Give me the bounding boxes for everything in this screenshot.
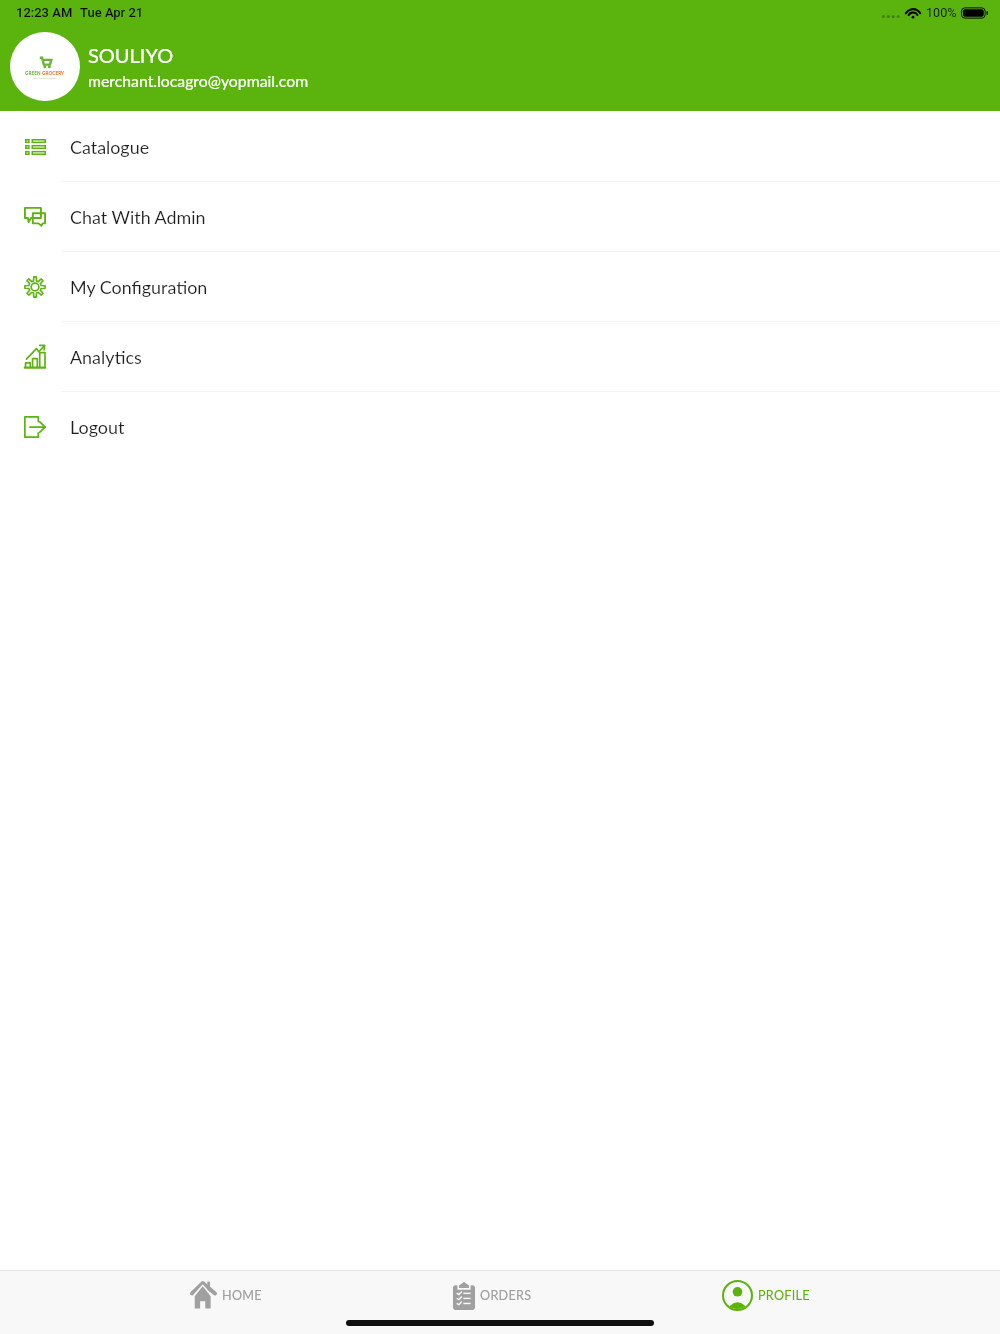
button[interactable]: Chat With Admin (0, 182, 1000, 251)
staticText: HOME (222, 1288, 262, 1303)
button[interactable]: My Configuration (0, 252, 1000, 321)
staticText: - fresh items is simple - (32, 76, 59, 79)
button[interactable]: PROFILE (722, 1274, 810, 1316)
staticText: GREEN (25, 70, 42, 76)
staticText: ORDERS (480, 1288, 532, 1303)
staticText: Catalogue (70, 136, 150, 157)
staticText: SOULIYO (88, 43, 174, 67)
staticText: Chat With Admin (70, 206, 206, 227)
staticText: merchant.locagro@yopmail.com (88, 71, 309, 90)
staticText: Logout (70, 416, 125, 437)
staticText: GROCERY (42, 70, 65, 76)
staticText: 12:23 AM (16, 5, 73, 20)
staticText: Analytics (70, 346, 142, 367)
staticText: My Configuration (70, 276, 208, 297)
button[interactable]: ORDERS (453, 1274, 532, 1316)
staticText: 100% (926, 5, 957, 20)
staticText: Tue Apr 21 (80, 5, 144, 20)
button[interactable]: Logout (0, 392, 1000, 461)
button[interactable]: HOME (190, 1274, 262, 1316)
button[interactable]: Analytics (0, 322, 1000, 391)
button[interactable]: Catalogue (0, 112, 1000, 181)
staticText: PROFILE (758, 1288, 810, 1303)
